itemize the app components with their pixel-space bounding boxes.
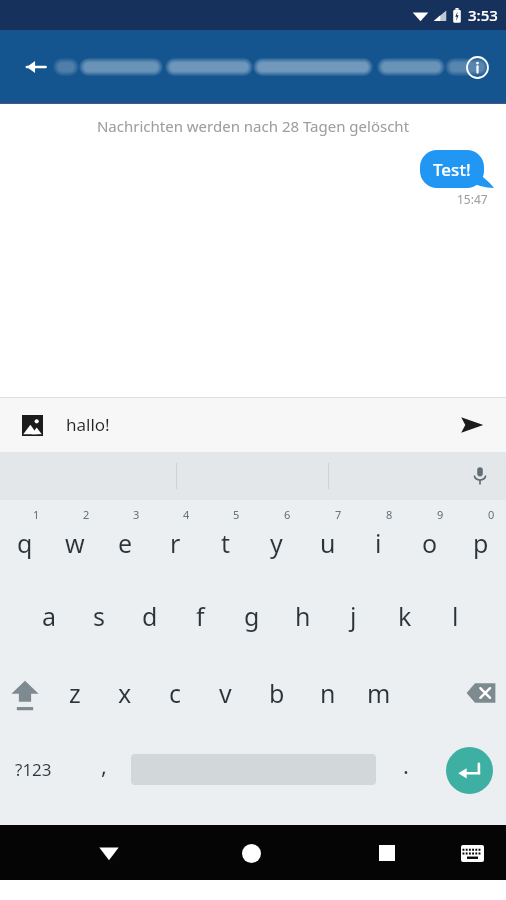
button[interactable]: Shift bbox=[0, 654, 50, 731]
button[interactable]: f bbox=[175, 577, 226, 654]
button[interactable]: Back bbox=[14, 45, 58, 89]
staticText: 4 bbox=[183, 507, 190, 522]
staticText: , bbox=[101, 750, 107, 780]
button[interactable]: Attach image bbox=[16, 409, 48, 441]
staticText: g bbox=[244, 599, 260, 633]
staticText: c bbox=[169, 676, 182, 710]
button[interactable]: Voice input bbox=[462, 458, 498, 494]
staticText: 0 bbox=[488, 507, 495, 522]
staticText: q bbox=[17, 526, 33, 560]
button[interactable]: hallo! bbox=[66, 413, 454, 436]
staticText: n bbox=[320, 676, 336, 710]
staticText: 6 bbox=[284, 507, 291, 522]
button[interactable]: b bbox=[251, 654, 302, 731]
button[interactable]: v bbox=[200, 654, 251, 731]
button[interactable]: 1 bbox=[0, 500, 50, 577]
staticText: p bbox=[473, 526, 489, 560]
staticText: o bbox=[422, 526, 438, 560]
button[interactable]: 0 bbox=[455, 500, 506, 577]
button[interactable]: Hide keyboard bbox=[85, 829, 133, 877]
button[interactable]: k bbox=[379, 577, 430, 654]
button[interactable]: l bbox=[430, 577, 481, 654]
staticText: t bbox=[221, 526, 231, 560]
button[interactable]: Send bbox=[454, 407, 490, 443]
button[interactable]: Home bbox=[227, 829, 275, 877]
staticText: z bbox=[69, 676, 81, 710]
button[interactable]: 3 bbox=[100, 500, 150, 577]
staticText: r bbox=[170, 526, 181, 560]
button[interactable]: Test! bbox=[420, 150, 494, 188]
button[interactable]: 2 bbox=[50, 500, 100, 577]
staticText: 1 bbox=[33, 507, 40, 522]
staticText: s bbox=[93, 599, 105, 633]
staticText: 7 bbox=[335, 507, 342, 522]
staticText: v bbox=[219, 676, 232, 710]
button[interactable]: j bbox=[328, 577, 379, 654]
button[interactable]: , bbox=[84, 750, 124, 790]
staticText: w bbox=[65, 526, 85, 560]
staticText: b bbox=[269, 676, 285, 710]
staticText: f bbox=[196, 599, 205, 633]
staticText: ?123 bbox=[15, 758, 52, 781]
staticText: a bbox=[42, 599, 57, 633]
button[interactable]: . bbox=[386, 750, 426, 790]
staticText: 5 bbox=[233, 507, 240, 522]
staticText: l bbox=[452, 599, 459, 633]
button[interactable]: 7 bbox=[302, 500, 353, 577]
button[interactable]: 6 bbox=[251, 500, 302, 577]
button[interactable]: Recent apps bbox=[363, 829, 411, 877]
button[interactable]: x bbox=[100, 654, 150, 731]
staticText: m bbox=[367, 676, 391, 710]
staticText: . bbox=[403, 750, 409, 780]
staticText: 8 bbox=[386, 507, 393, 522]
button[interactable]: 4 bbox=[150, 500, 200, 577]
staticText: x bbox=[118, 676, 132, 710]
staticText: 2 bbox=[83, 507, 90, 522]
button[interactable]: n bbox=[302, 654, 353, 731]
staticText: d bbox=[142, 599, 158, 633]
staticText: e bbox=[118, 526, 133, 560]
button[interactable]: d bbox=[124, 577, 175, 654]
button[interactable]: ?123 bbox=[0, 731, 66, 808]
button[interactable]: Enter bbox=[444, 745, 494, 795]
button[interactable]: m bbox=[353, 654, 404, 731]
staticText: 3:53 bbox=[468, 5, 498, 25]
button[interactable]: h bbox=[277, 577, 328, 654]
staticText: u bbox=[320, 526, 336, 560]
button[interactable]: 8 bbox=[353, 500, 404, 577]
button[interactable]: Backspace bbox=[455, 654, 506, 731]
button[interactable]: Conversation details bbox=[455, 45, 499, 89]
button[interactable]: Switch keyboard bbox=[450, 831, 494, 875]
staticText: 9 bbox=[437, 507, 444, 522]
staticText: Nachrichten werden nach 28 Tagen gelösch… bbox=[0, 116, 506, 136]
button[interactable]: a bbox=[24, 577, 74, 654]
staticText: j bbox=[350, 599, 357, 633]
staticText: h bbox=[295, 599, 311, 633]
staticText: 15:47 bbox=[457, 191, 488, 207]
staticText: Test! bbox=[433, 158, 471, 181]
button[interactable]: 5 bbox=[200, 500, 251, 577]
button[interactable]: 9 bbox=[404, 500, 455, 577]
button[interactable]: z bbox=[50, 654, 100, 731]
button[interactable]: g bbox=[226, 577, 277, 654]
button[interactable]: c bbox=[150, 654, 200, 731]
staticText: i bbox=[375, 526, 382, 560]
staticText: 3 bbox=[133, 507, 140, 522]
button[interactable]: s bbox=[74, 577, 124, 654]
staticText: k bbox=[398, 599, 412, 633]
staticText: y bbox=[270, 526, 283, 560]
